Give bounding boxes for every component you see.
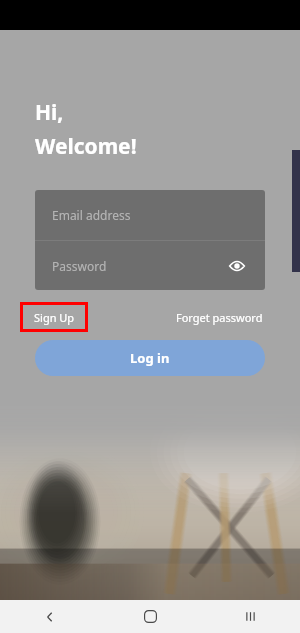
staticText: Welcome! <box>35 132 137 161</box>
button[interactable]: Forget password <box>172 306 267 329</box>
staticText: Sign Up <box>34 310 75 325</box>
button[interactable]: Log in <box>35 340 265 376</box>
staticText: Email address <box>52 207 131 223</box>
button[interactable]: Back <box>0 600 100 633</box>
staticText: Hi, <box>35 98 64 127</box>
button[interactable]: Recents <box>200 600 300 633</box>
button[interactable]: Home <box>100 600 200 633</box>
button[interactable]: Show password <box>226 255 248 277</box>
button[interactable]: Password <box>35 241 265 290</box>
staticText: Log in <box>130 349 170 367</box>
button[interactable]: Email address <box>35 190 265 240</box>
button[interactable]: Sign Up <box>20 302 88 332</box>
staticText: Forget password <box>176 310 263 325</box>
staticText: Password <box>52 258 107 274</box>
